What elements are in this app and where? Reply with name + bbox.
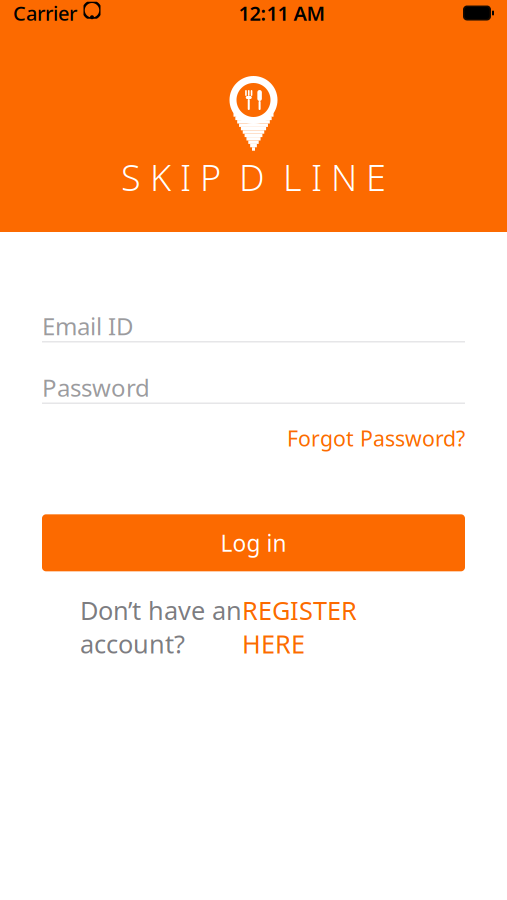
staticText: 12:11 AM bbox=[238, 0, 325, 26]
button[interactable]: Forgot Password? bbox=[287, 418, 465, 458]
staticText: Log in bbox=[220, 528, 286, 558]
staticText: Don’t have an account? bbox=[80, 593, 242, 661]
staticText: Password bbox=[42, 372, 150, 403]
button[interactable]: Log in bbox=[42, 514, 465, 571]
staticText: Forgot Password? bbox=[287, 424, 465, 452]
staticText: Email ID bbox=[42, 310, 134, 342]
button[interactable]: Password bbox=[42, 372, 465, 404]
staticText: Carrier bbox=[13, 0, 77, 26]
button[interactable]: REGISTER HERE bbox=[242, 593, 357, 661]
staticText: S K I P D L I N E bbox=[121, 153, 386, 201]
button[interactable]: Email ID bbox=[42, 311, 465, 342]
staticText: REGISTER HERE bbox=[242, 593, 357, 661]
